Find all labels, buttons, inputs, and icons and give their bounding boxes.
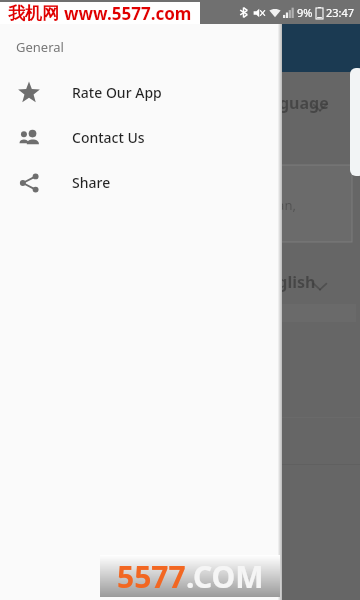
staticText: .COM [186, 556, 264, 597]
staticText: Language [250, 92, 329, 114]
staticText: Italian, [254, 196, 296, 214]
staticText: Share [72, 173, 111, 192]
button[interactable]: Rate Our App [0, 70, 282, 115]
staticText: 9% [297, 5, 313, 20]
staticText: General [16, 38, 64, 56]
staticText: www.5577.com [64, 2, 192, 24]
staticText: 5577 [117, 556, 186, 597]
staticText: Contact Us [72, 128, 145, 147]
staticText: 23:47 [326, 5, 355, 20]
staticText: English [258, 271, 316, 293]
staticText: 我机网 [8, 3, 59, 24]
button[interactable]: Contact Us [0, 115, 282, 160]
staticText: Rate Our App [72, 83, 162, 102]
button[interactable]: Share [0, 160, 282, 205]
